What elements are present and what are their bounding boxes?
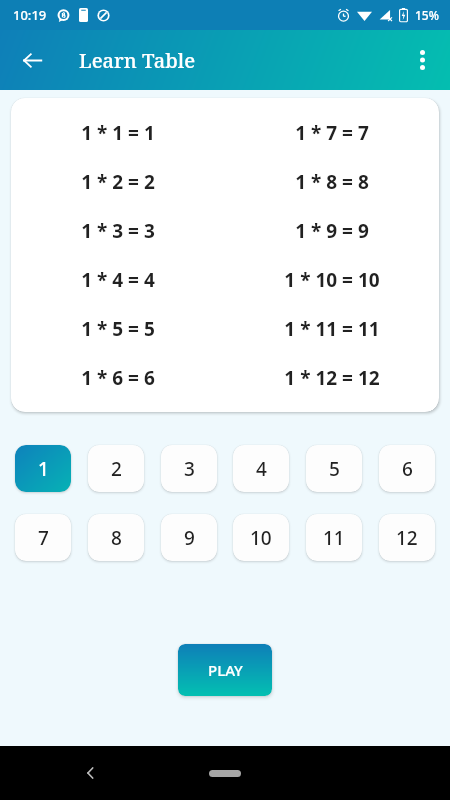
button[interactable]: 8 [88, 514, 144, 561]
button[interactable]: Back [70, 752, 112, 794]
staticText: 4 [256, 456, 267, 482]
staticText: 1 * 1 = 1 [81, 120, 155, 146]
staticText: 8 [111, 525, 122, 551]
button[interactable]: 6 [379, 445, 435, 492]
staticText: 12 [396, 525, 418, 551]
staticText: 1 * 9 = 9 [295, 218, 369, 244]
staticText: 2 [111, 456, 122, 482]
staticText: 7 [38, 525, 49, 551]
button[interactable]: 5 [306, 445, 362, 492]
staticText: 10 [250, 525, 272, 551]
staticText: Learn Table [79, 47, 196, 74]
staticText: 1 * 11 = 11 [284, 316, 380, 342]
staticText: 1 * 6 = 6 [81, 365, 155, 391]
staticText: 1 * 5 = 5 [81, 316, 155, 342]
staticText: 1 * 4 = 4 [81, 267, 155, 293]
button[interactable]: PLAY [178, 644, 272, 696]
staticText: 1 * 8 = 8 [295, 169, 369, 195]
staticText: 10:19 [13, 6, 47, 24]
button[interactable]: Home [194, 760, 256, 786]
staticText: 1 [38, 456, 49, 482]
staticText: 1 * 3 = 3 [81, 218, 155, 244]
button[interactable]: 10 [233, 514, 289, 561]
staticText: 15% [415, 7, 439, 23]
button[interactable]: 7 [15, 514, 71, 561]
button[interactable]: 4 [233, 445, 289, 492]
button[interactable]: 1 [15, 445, 71, 492]
staticText: PLAY [208, 660, 243, 680]
staticText: 6 [402, 456, 413, 482]
staticText: 1 * 12 = 12 [284, 365, 380, 391]
staticText: 5 [329, 456, 340, 482]
button[interactable]: 11 [306, 514, 362, 561]
button[interactable]: 12 [379, 514, 435, 561]
button[interactable]: 3 [161, 445, 217, 492]
button[interactable]: 2 [88, 445, 144, 492]
button[interactable]: More options [400, 38, 444, 82]
staticText: 1 * 10 = 10 [284, 267, 380, 293]
staticText: 1 * 2 = 2 [81, 169, 155, 195]
staticText: 3 [184, 456, 195, 482]
button[interactable]: 9 [161, 514, 217, 561]
staticText: 9 [184, 525, 195, 551]
button[interactable]: Back [10, 38, 54, 82]
staticText: 1 * 7 = 7 [295, 120, 369, 146]
staticText: 11 [323, 525, 345, 551]
